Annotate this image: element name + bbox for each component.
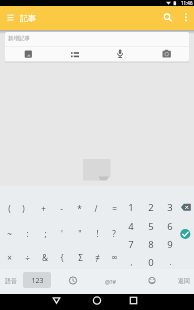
staticText: ∞ bbox=[111, 252, 118, 262]
button[interactable]: ? bbox=[105, 226, 123, 240]
staticText: 5 bbox=[148, 220, 154, 233]
button[interactable]: ≠ bbox=[88, 250, 106, 264]
staticText: { bbox=[60, 252, 64, 263]
staticText: 3 bbox=[167, 201, 173, 214]
button[interactable] bbox=[20, 46, 36, 61]
staticText: ; bbox=[44, 228, 47, 239]
staticText: : bbox=[26, 228, 29, 239]
button[interactable]: , bbox=[122, 255, 140, 269]
staticText: " bbox=[78, 228, 82, 239]
button[interactable]: 4 bbox=[122, 219, 140, 233]
staticText: ! bbox=[96, 228, 99, 239]
staticText: * bbox=[77, 203, 82, 214]
button[interactable]: ; bbox=[36, 226, 54, 240]
staticText: 語音 bbox=[5, 277, 17, 285]
staticText: 6 bbox=[167, 220, 173, 233]
button[interactable] bbox=[178, 9, 193, 27]
button[interactable] bbox=[158, 46, 174, 61]
button[interactable] bbox=[66, 273, 80, 288]
button[interactable]: 6 bbox=[161, 219, 179, 233]
button[interactable] bbox=[178, 226, 194, 242]
staticText: Σ bbox=[78, 252, 83, 263]
button[interactable]: @?# bbox=[98, 274, 122, 288]
button[interactable]: * bbox=[70, 201, 88, 215]
button[interactable]: 1 bbox=[122, 200, 140, 214]
staticText: ' bbox=[61, 228, 63, 239]
button[interactable]: 返回 bbox=[174, 274, 194, 288]
button[interactable] bbox=[112, 46, 128, 61]
staticText: 9 bbox=[167, 238, 173, 251]
button[interactable] bbox=[159, 9, 176, 27]
button[interactable]: ∞ bbox=[105, 250, 123, 264]
button[interactable]: 語音 bbox=[1, 274, 21, 288]
button[interactable]: ! bbox=[88, 226, 106, 240]
button[interactable]: ÷ bbox=[18, 250, 36, 264]
staticText: ~ bbox=[7, 228, 12, 239]
button[interactable]: - bbox=[52, 201, 70, 215]
button[interactable]: & bbox=[36, 250, 54, 264]
staticText: ÷ bbox=[25, 252, 30, 263]
button[interactable] bbox=[5, 32, 189, 61]
staticText: 4 bbox=[128, 220, 134, 233]
button[interactable] bbox=[88, 294, 105, 310]
button[interactable]: " bbox=[71, 226, 89, 240]
staticText: ) bbox=[22, 203, 25, 214]
staticText: / bbox=[94, 203, 98, 214]
button[interactable]: × bbox=[0, 250, 18, 264]
button[interactable] bbox=[48, 294, 65, 310]
staticText: 記事 bbox=[20, 13, 36, 23]
button[interactable]: ( bbox=[0, 201, 18, 215]
staticText: 返回 bbox=[178, 277, 190, 285]
staticText: & bbox=[42, 252, 48, 263]
button[interactable]: 8 bbox=[142, 237, 160, 251]
button[interactable]: . bbox=[161, 255, 179, 269]
button[interactable] bbox=[178, 199, 194, 215]
staticText: , bbox=[130, 257, 133, 267]
staticText: + bbox=[41, 203, 46, 214]
staticText: = bbox=[112, 203, 117, 214]
button[interactable]: : bbox=[18, 226, 36, 240]
button[interactable]: = bbox=[105, 201, 123, 215]
staticText: 1 bbox=[128, 201, 134, 214]
staticText: × bbox=[7, 252, 12, 263]
staticText: - bbox=[60, 203, 63, 214]
button[interactable] bbox=[4, 9, 22, 27]
button[interactable]: Σ bbox=[71, 250, 89, 264]
staticText: ≠ bbox=[95, 252, 100, 263]
button[interactable]: 2 bbox=[142, 200, 160, 214]
staticText: 7 bbox=[128, 238, 134, 251]
button[interactable]: 0 bbox=[142, 255, 160, 269]
button[interactable]: + bbox=[34, 201, 52, 215]
button[interactable]: { bbox=[53, 250, 71, 264]
button[interactable]: ) bbox=[14, 201, 32, 215]
button[interactable]: 9 bbox=[161, 237, 179, 251]
staticText: . bbox=[169, 257, 172, 267]
button[interactable] bbox=[0, 6, 194, 30]
staticText: ( bbox=[8, 203, 11, 214]
button[interactable]: 7 bbox=[122, 237, 140, 251]
button[interactable]: ~ bbox=[0, 226, 18, 240]
staticText: 0 bbox=[148, 256, 154, 269]
staticText: 新增記事 bbox=[8, 35, 30, 42]
button[interactable] bbox=[125, 294, 142, 310]
button[interactable]: ' bbox=[53, 226, 71, 240]
staticText: 8 bbox=[148, 238, 154, 251]
staticText: 123 bbox=[31, 276, 44, 286]
button[interactable]: / bbox=[87, 201, 105, 215]
button[interactable]: 5 bbox=[142, 219, 160, 233]
button[interactable] bbox=[66, 46, 82, 61]
staticText: 2 bbox=[148, 201, 154, 214]
button[interactable] bbox=[145, 273, 159, 288]
staticText: 11:46 bbox=[181, 0, 193, 6]
staticText: ? bbox=[112, 228, 116, 239]
button[interactable] bbox=[23, 272, 51, 288]
staticText: @?# bbox=[105, 278, 116, 285]
button[interactable]: 3 bbox=[161, 200, 179, 214]
